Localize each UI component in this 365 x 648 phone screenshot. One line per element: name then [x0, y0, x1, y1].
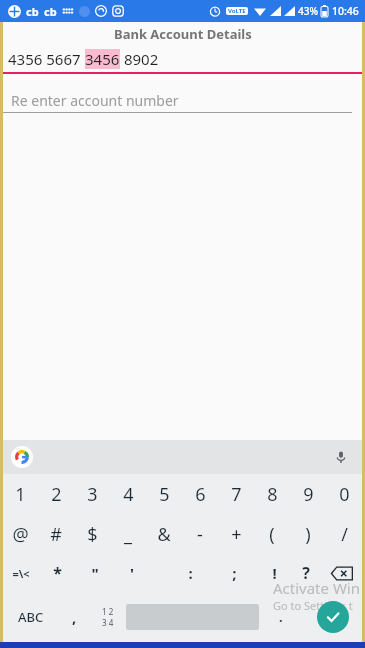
staticText: (	[269, 522, 275, 547]
button[interactable]: &	[146, 514, 182, 554]
button[interactable]: Backspace	[322, 554, 362, 592]
button[interactable]: $	[74, 514, 110, 554]
staticText: :	[188, 563, 193, 583]
staticText: +	[231, 522, 242, 547]
button[interactable]: -	[182, 514, 218, 554]
button[interactable]: =\<	[3, 554, 39, 592]
staticText: 9	[303, 482, 314, 507]
staticText: "	[91, 563, 99, 583]
staticText: -	[197, 522, 203, 547]
staticText: 8902	[120, 49, 159, 69]
staticText: ,	[72, 607, 77, 627]
button[interactable]: ?	[289, 554, 322, 592]
staticText: Go to Settings t	[273, 598, 353, 613]
button[interactable]: '	[113, 554, 150, 592]
staticText: 3	[87, 482, 98, 507]
staticText: .	[279, 608, 283, 626]
staticText: /	[341, 522, 348, 547]
staticText: Activate Win	[273, 578, 360, 598]
button[interactable]: :	[172, 554, 209, 592]
button[interactable]: _	[110, 514, 146, 554]
button[interactable]: !	[260, 554, 289, 592]
staticText: 6	[195, 482, 206, 507]
button[interactable]: )	[290, 514, 326, 554]
staticText: !	[272, 563, 277, 583]
staticText: &	[157, 522, 171, 547]
button[interactable]: *	[39, 554, 76, 592]
button[interactable]: 1	[3, 474, 38, 514]
button[interactable]: /	[326, 514, 362, 554]
staticText: 3456	[85, 49, 120, 69]
staticText: 4	[123, 482, 134, 507]
staticText: '	[130, 563, 134, 583]
staticText: *	[53, 562, 62, 584]
button[interactable]: ;	[216, 554, 253, 592]
staticText: ?	[302, 562, 310, 584]
staticText: 7	[231, 482, 242, 507]
staticText: cb	[44, 4, 57, 19]
staticText: Re enter account number	[11, 91, 179, 110]
staticText: @	[12, 522, 29, 547]
staticText: #	[50, 522, 62, 547]
staticText: cb	[26, 4, 39, 19]
button[interactable]: Done	[317, 601, 349, 633]
button[interactable]: 7	[218, 474, 254, 514]
button[interactable]: 2	[38, 474, 74, 514]
staticText: 5	[159, 482, 170, 507]
staticText: 1 2	[102, 606, 114, 617]
button[interactable]: +	[218, 514, 254, 554]
staticText: ABC	[18, 608, 44, 626]
staticText: 1	[15, 482, 26, 507]
staticText: 43%	[298, 4, 318, 18]
staticText: ;	[232, 563, 237, 583]
button[interactable]: 8	[254, 474, 290, 514]
button[interactable]: @	[3, 514, 38, 554]
button[interactable]: ,	[59, 592, 89, 642]
button[interactable]: (	[254, 514, 290, 554]
button[interactable]: Numbers	[89, 592, 126, 642]
staticText: _	[124, 522, 132, 547]
button[interactable]: ABC	[3, 592, 59, 642]
staticText: Bank Account Details	[114, 25, 252, 43]
staticText: 0	[339, 482, 350, 507]
staticText: VoLTE	[228, 7, 246, 15]
staticText: 8	[267, 482, 278, 507]
button[interactable]: 9	[290, 474, 326, 514]
button[interactable]: 3	[74, 474, 110, 514]
button[interactable]: #	[38, 514, 74, 554]
button[interactable]: Google	[11, 446, 33, 468]
button[interactable]: Voice input	[330, 446, 352, 468]
staticText: 10:46	[332, 4, 359, 18]
button[interactable]: 6	[182, 474, 218, 514]
button[interactable]: 0	[326, 474, 362, 514]
button[interactable]: 5	[146, 474, 182, 514]
staticText: =\<	[12, 566, 30, 581]
button[interactable]: "	[76, 554, 113, 592]
staticText: 3 4	[102, 617, 114, 628]
staticText: 2	[51, 482, 62, 507]
staticText: 4356 5667	[8, 49, 85, 69]
button[interactable]: 4	[110, 474, 146, 514]
button[interactable]: .	[259, 592, 303, 642]
staticText: )	[305, 522, 311, 547]
staticText: $	[87, 522, 98, 547]
